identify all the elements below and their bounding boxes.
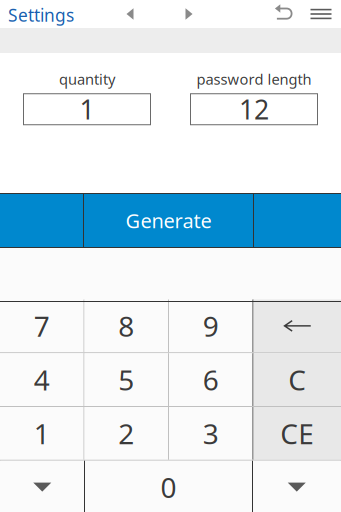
button[interactable]: Generate bbox=[84, 193, 253, 248]
button[interactable]: Scroll bbox=[253, 461, 340, 512]
staticText: Settings bbox=[8, 3, 74, 26]
staticText: 1 bbox=[34, 415, 50, 452]
button[interactable]: Previous result bbox=[0, 193, 83, 248]
staticText: password length bbox=[196, 69, 311, 89]
button[interactable]: 9 bbox=[169, 299, 252, 352]
button[interactable]: 2 bbox=[84, 407, 168, 460]
staticText: 1 bbox=[79, 91, 94, 127]
staticText: quantity bbox=[59, 69, 115, 89]
staticText: 8 bbox=[118, 307, 134, 344]
button[interactable]: 1 bbox=[0, 407, 83, 460]
button[interactable]: Menu bbox=[306, 0, 336, 28]
button[interactable]: Backspace bbox=[253, 299, 341, 352]
button[interactable]: 4 bbox=[0, 353, 83, 406]
button[interactable]: 3 bbox=[169, 407, 252, 460]
button[interactable]: 6 bbox=[169, 353, 252, 406]
button[interactable]: Previous bbox=[117, 0, 143, 28]
staticText: 7 bbox=[34, 307, 50, 344]
button[interactable]: 12 bbox=[190, 94, 317, 125]
staticText: 9 bbox=[203, 307, 219, 344]
staticText: 5 bbox=[118, 361, 134, 398]
button[interactable]: Settings bbox=[8, 1, 78, 29]
staticText: 2 bbox=[118, 415, 134, 452]
staticText: 0 bbox=[160, 468, 176, 506]
button[interactable]: CE bbox=[253, 407, 341, 460]
button[interactable]: 1 bbox=[23, 94, 150, 125]
button[interactable]: 5 bbox=[84, 353, 168, 406]
button[interactable]: 7 bbox=[0, 299, 83, 352]
button[interactable]: 8 bbox=[84, 299, 168, 352]
button[interactable]: 0 bbox=[85, 461, 252, 512]
button[interactable]: Next result bbox=[254, 193, 341, 248]
button[interactable]: Scroll bbox=[0, 461, 84, 512]
button[interactable]: C bbox=[253, 353, 341, 406]
staticText: 6 bbox=[203, 361, 219, 398]
staticText: CE bbox=[280, 415, 314, 452]
button[interactable]: Undo bbox=[270, 0, 298, 28]
staticText: 3 bbox=[203, 415, 219, 452]
staticText: C bbox=[288, 361, 306, 398]
button[interactable]: Next bbox=[176, 0, 202, 28]
staticText: 12 bbox=[239, 91, 269, 127]
staticText: Generate bbox=[125, 207, 211, 234]
staticText: 4 bbox=[34, 361, 50, 398]
